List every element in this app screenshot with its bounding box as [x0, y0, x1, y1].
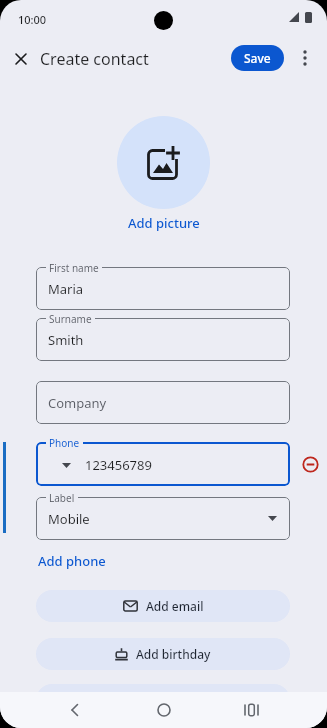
button[interactable]: [157, 703, 171, 717]
button[interactable]: [294, 45, 316, 71]
button[interactable]: [7, 45, 35, 73]
staticText: Maria: [48, 280, 84, 298]
staticText: 123456789: [85, 456, 152, 474]
staticText: Create contact: [40, 48, 149, 70]
button[interactable]: [36, 442, 290, 486]
staticText: Add picture: [128, 214, 200, 232]
button[interactable]: [36, 381, 290, 424]
staticText: Company: [48, 394, 107, 412]
button[interactable]: [36, 497, 290, 540]
staticText: Phone: [49, 436, 80, 450]
button[interactable]: [69, 704, 81, 716]
button[interactable]: Add birthday: [36, 638, 290, 670]
button[interactable]: [302, 456, 319, 473]
button[interactable]: [36, 267, 290, 310]
staticText: 10:00: [18, 12, 47, 27]
staticText: Smith: [48, 331, 84, 349]
button[interactable]: Add phone: [30, 544, 114, 578]
staticText: First name: [49, 261, 99, 275]
button[interactable]: Save: [231, 45, 284, 71]
button[interactable]: [117, 116, 210, 209]
staticText: Label: [49, 491, 75, 505]
button[interactable]: [36, 318, 290, 361]
button[interactable]: [244, 704, 259, 719]
staticText: Save: [244, 50, 271, 66]
staticText: Add phone: [38, 552, 106, 570]
staticText: Add birthday: [136, 646, 211, 662]
button[interactable]: Add email: [36, 590, 290, 622]
staticText: Surname: [49, 312, 92, 326]
button[interactable]: Add picture: [0, 214, 327, 232]
staticText: Mobile: [48, 510, 90, 528]
staticText: Add email: [146, 598, 204, 614]
